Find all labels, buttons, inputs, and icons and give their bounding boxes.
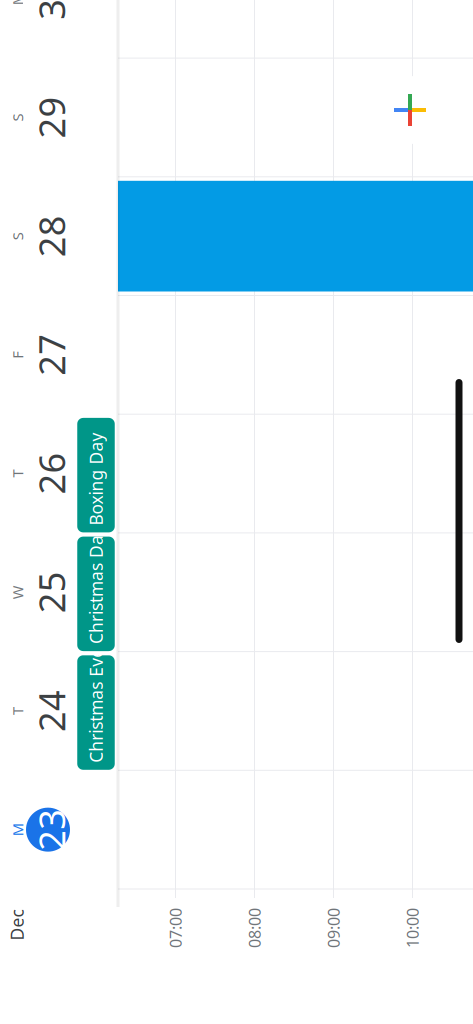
staticText: 26: [254, 303, 296, 351]
staticText: T: [271, 283, 279, 303]
staticText: Christmas Eve: [0, 360, 101, 383]
button[interactable]: S: [453, 275, 473, 347]
button[interactable]: W: [97, 275, 216, 347]
button[interactable]: F: [334, 275, 453, 347]
button[interactable]: Christmas Eve: [0, 353, 93, 390]
button[interactable]: Christmas Day: [97, 353, 212, 390]
staticText: W: [149, 283, 163, 303]
staticText: 24: [17, 303, 59, 351]
button[interactable]: T: [216, 275, 334, 347]
staticText: 25: [135, 303, 177, 351]
button[interactable]: T: [0, 275, 97, 347]
staticText: Christmas Day: [104, 360, 222, 383]
staticText: 27: [373, 303, 415, 351]
staticText: F: [390, 283, 398, 303]
